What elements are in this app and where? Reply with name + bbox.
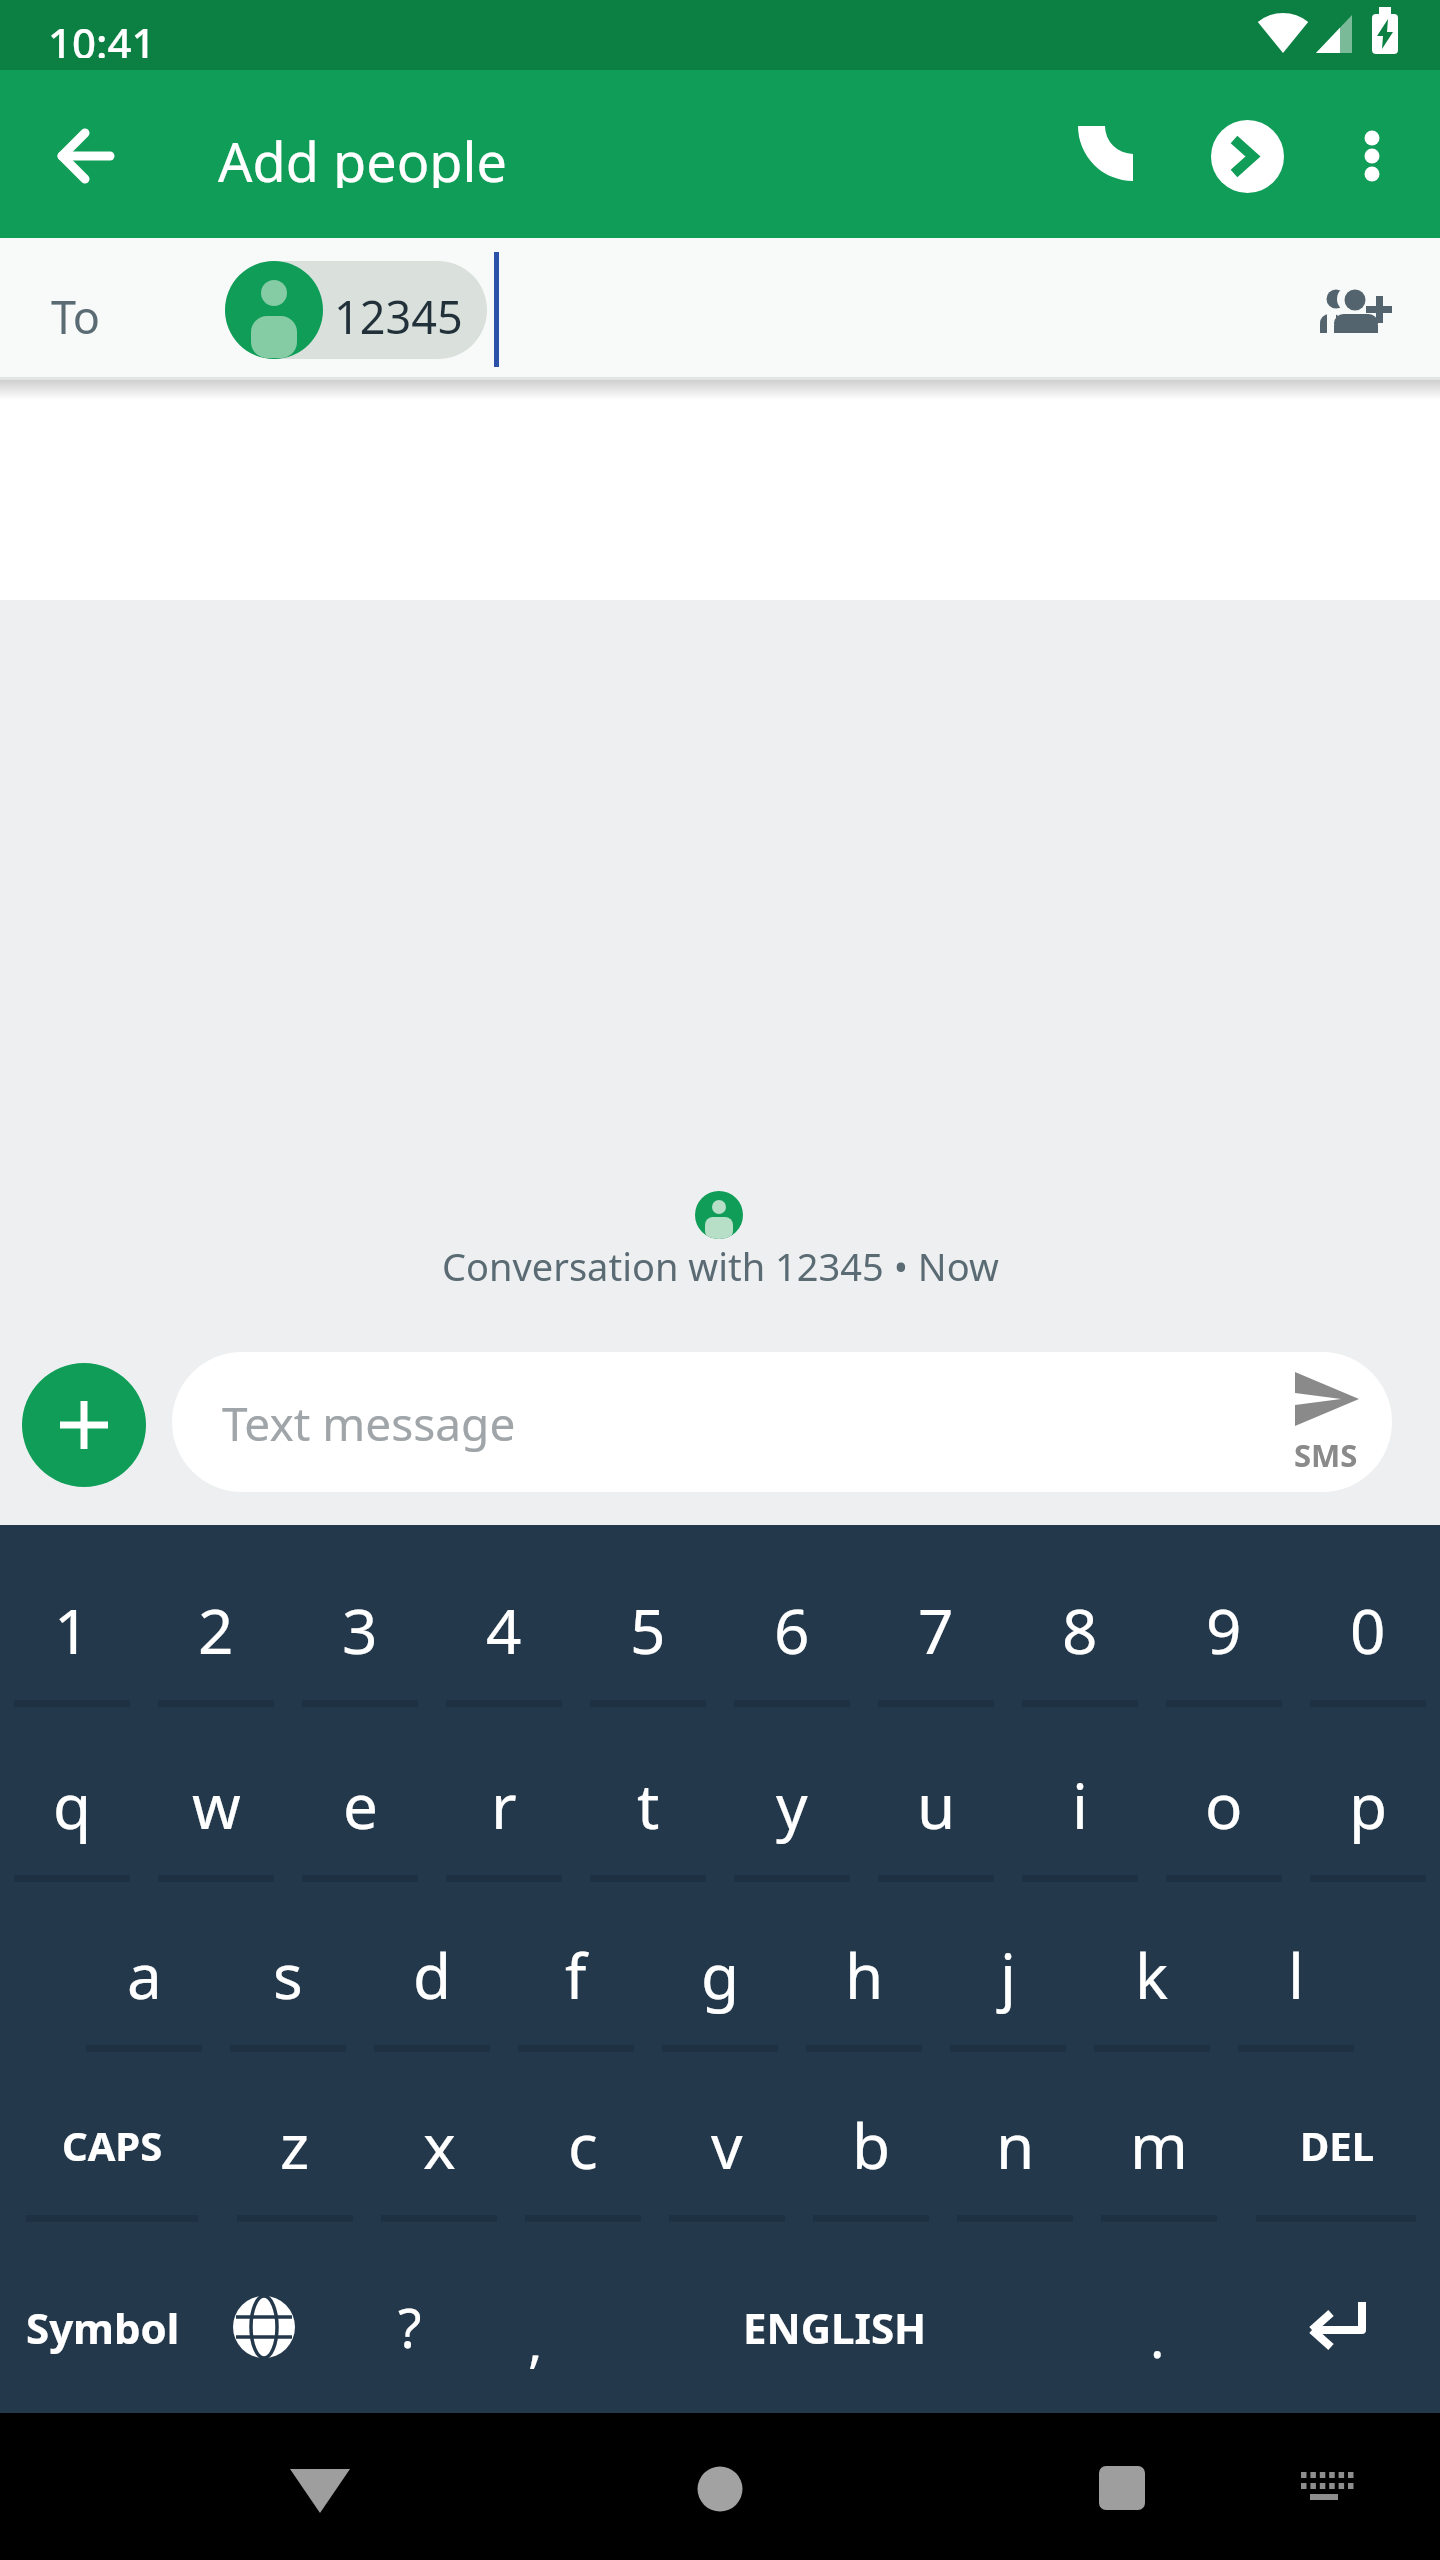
button[interactable] <box>205 2272 325 2382</box>
button[interactable]: u <box>864 1750 1008 1860</box>
button[interactable]: 6 <box>720 1575 864 1685</box>
staticText: Symbol <box>26 2299 180 2356</box>
staticText: r <box>491 1763 517 1847</box>
staticText: b <box>852 2103 891 2187</box>
button[interactable] <box>34 106 134 206</box>
staticText: x <box>423 2103 456 2187</box>
staticText: 4 <box>486 1588 522 1672</box>
staticText: ? <box>398 2290 422 2364</box>
button[interactable]: n <box>943 2090 1087 2200</box>
button[interactable]: o <box>1152 1750 1296 1860</box>
staticText: g <box>701 1933 740 2017</box>
staticText: 1 <box>54 1588 90 1672</box>
button[interactable] <box>1211 120 1284 193</box>
staticText: e <box>343 1763 378 1847</box>
staticText: Text message <box>222 1392 516 1454</box>
button[interactable] <box>1053 106 1153 206</box>
button[interactable]: i <box>1008 1750 1152 1860</box>
button[interactable]: ? <box>345 2272 475 2382</box>
button[interactable]: m <box>1087 2090 1231 2200</box>
staticText: s <box>273 1933 303 2017</box>
staticText: k <box>1135 1933 1169 2017</box>
staticText: h <box>845 1933 884 2017</box>
staticText: . <box>1150 2300 1165 2374</box>
button[interactable]: ENGLISH <box>600 2272 1070 2382</box>
button[interactable]: e <box>288 1750 432 1860</box>
staticText: Add people <box>218 124 507 188</box>
staticText: a <box>127 1933 162 2017</box>
staticText: i <box>1072 1763 1088 1847</box>
button[interactable]: , <box>470 2286 600 2396</box>
button[interactable]: 2 <box>144 1575 288 1685</box>
staticText: f <box>565 1933 587 2017</box>
staticText: 0 <box>1350 1588 1386 1672</box>
staticText: 3 <box>342 1588 378 1672</box>
staticText: 6 <box>774 1588 810 1672</box>
button[interactable] <box>22 1363 146 1487</box>
staticText: ENGLISH <box>743 2299 927 2356</box>
button[interactable]: Symbol <box>0 2272 205 2382</box>
staticText: j <box>1000 1933 1016 2017</box>
staticText: To <box>51 286 101 336</box>
staticText: SMS <box>1294 1434 1358 1470</box>
button[interactable] <box>1050 2430 1190 2550</box>
button[interactable]: x <box>367 2090 511 2200</box>
staticText: v <box>711 2103 743 2187</box>
button[interactable]: b <box>799 2090 943 2200</box>
button[interactable]: g <box>648 1920 792 2030</box>
button[interactable]: y <box>720 1750 864 1860</box>
staticText: z <box>280 2103 310 2187</box>
button[interactable]: a <box>72 1920 216 2030</box>
button[interactable]: w <box>144 1750 288 1860</box>
button[interactable]: s <box>216 1920 360 2030</box>
button[interactable]: t <box>576 1750 720 1860</box>
staticText: l <box>1288 1933 1304 2017</box>
staticText: 10:41 <box>48 14 156 58</box>
button[interactable]: 5 <box>576 1575 720 1685</box>
button[interactable]: l <box>1224 1920 1368 2030</box>
staticText: t <box>637 1763 660 1847</box>
staticText: c <box>568 2103 598 2187</box>
button[interactable]: q <box>0 1750 144 1860</box>
button[interactable] <box>1300 265 1410 355</box>
staticText: n <box>996 2103 1035 2187</box>
button[interactable]: 1 <box>0 1575 144 1685</box>
button[interactable] <box>1270 2272 1420 2382</box>
staticText: o <box>1205 1763 1243 1847</box>
button[interactable]: z <box>223 2090 367 2200</box>
button[interactable]: 3 <box>288 1575 432 1685</box>
staticText: Conversation with 12345 • Now <box>442 1240 999 1286</box>
button[interactable]: . <box>1092 2282 1222 2392</box>
button[interactable]: p <box>1296 1750 1440 1860</box>
staticText: 2 <box>198 1588 234 1672</box>
button[interactable]: d <box>360 1920 504 2030</box>
button[interactable]: DEL <box>1245 2090 1430 2200</box>
button[interactable]: f <box>504 1920 648 2030</box>
button[interactable]: j <box>936 1920 1080 2030</box>
button[interactable]: c <box>511 2090 655 2200</box>
staticText: DEL <box>1300 2118 1375 2172</box>
button[interactable]: CAPS <box>0 2090 224 2200</box>
button[interactable]: 0 <box>1296 1575 1440 1685</box>
button[interactable]: 4 <box>432 1575 576 1685</box>
button[interactable] <box>1332 106 1422 206</box>
button[interactable]: v <box>655 2090 799 2200</box>
staticText: p <box>1349 1763 1388 1847</box>
staticText: w <box>192 1763 241 1847</box>
button[interactable] <box>250 2430 390 2550</box>
button[interactable]: h <box>792 1920 936 2030</box>
button[interactable]: r <box>432 1750 576 1860</box>
staticText: 12345 <box>334 286 463 336</box>
button[interactable] <box>172 1352 1392 1492</box>
button[interactable] <box>1260 2430 1400 2550</box>
button[interactable]: k <box>1080 1920 1224 2030</box>
staticText: 8 <box>1062 1588 1098 1672</box>
staticText: u <box>917 1763 956 1847</box>
button[interactable]: 8 <box>1008 1575 1152 1685</box>
staticText: 5 <box>630 1588 666 1672</box>
button[interactable]: 9 <box>1152 1575 1296 1685</box>
button[interactable] <box>650 2430 790 2550</box>
staticText: 7 <box>918 1588 954 1672</box>
button[interactable] <box>225 261 487 359</box>
button[interactable]: 7 <box>864 1575 1008 1685</box>
